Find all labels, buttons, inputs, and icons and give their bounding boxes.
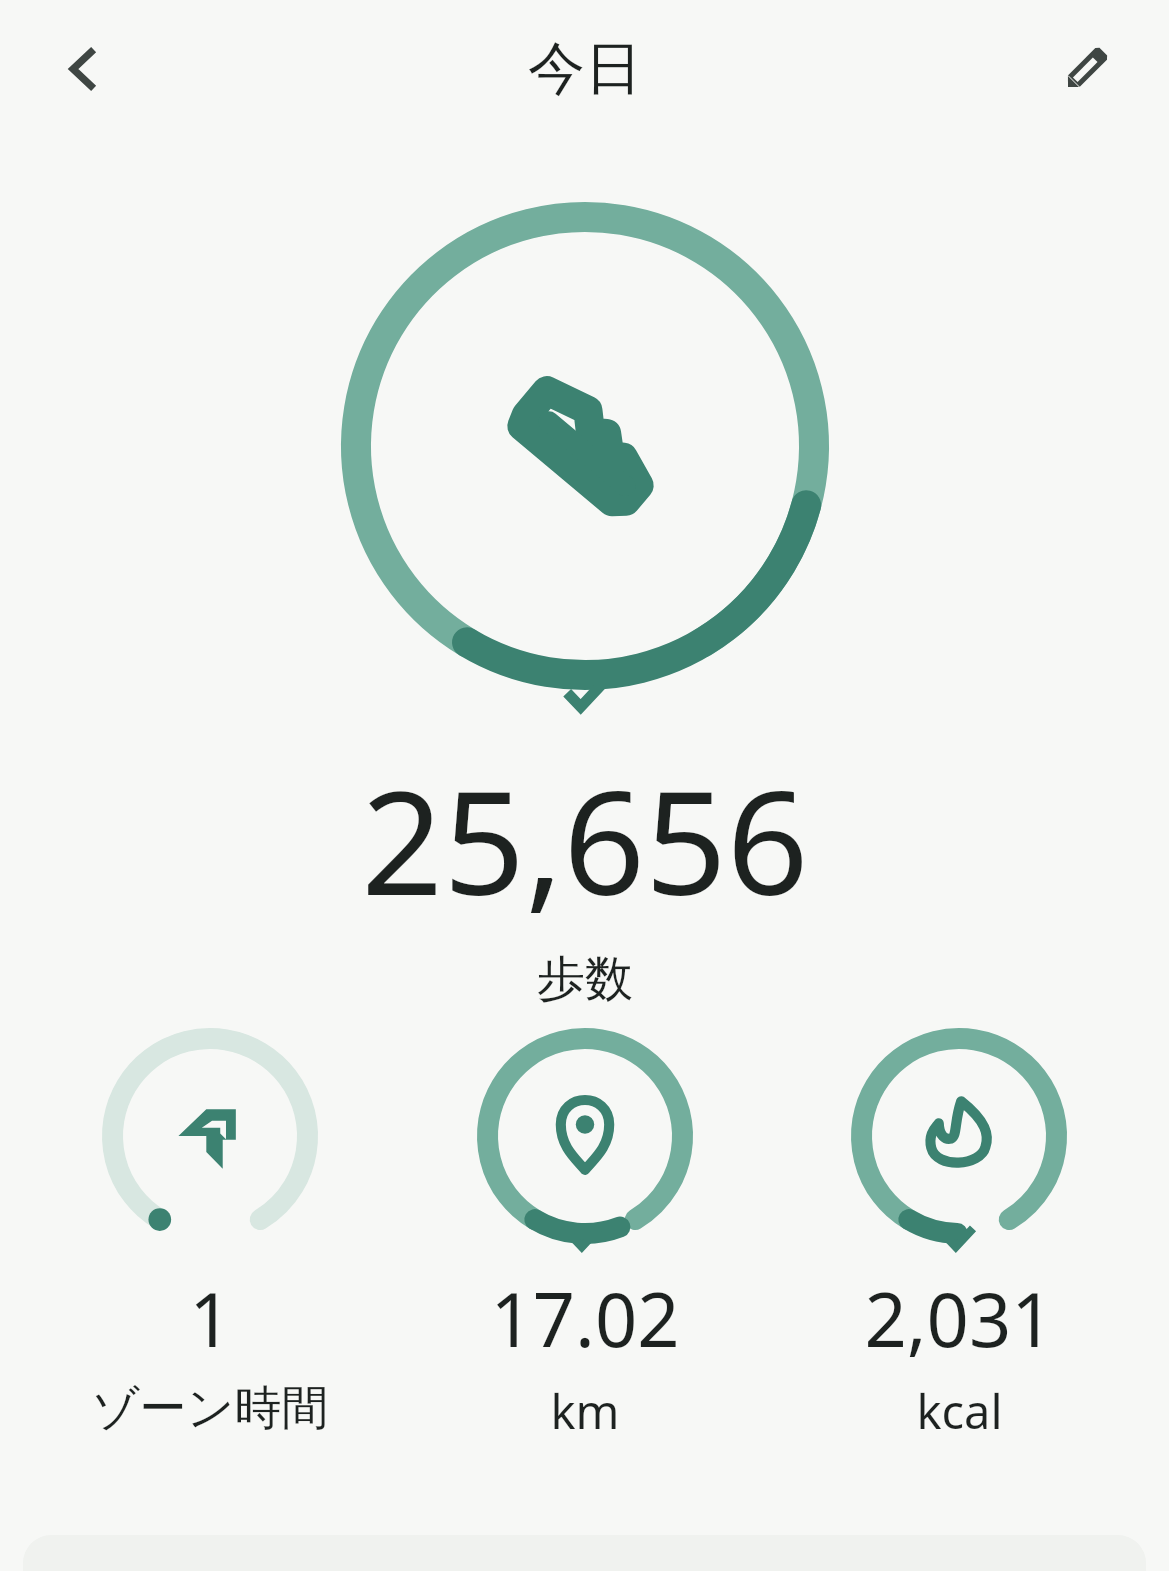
staticText: 今日	[528, 33, 642, 105]
button[interactable]: 1	[45, 1020, 375, 1438]
staticText: 歩数	[537, 949, 633, 1009]
staticText: 2,031	[864, 1268, 1054, 1369]
staticText: km	[550, 1379, 620, 1443]
staticText: 25,656	[361, 742, 809, 937]
button[interactable]: 17.02	[420, 1020, 750, 1443]
staticText: ゾーン時間	[91, 1379, 329, 1438]
staticText: 1	[189, 1268, 232, 1369]
staticText: 17.02	[490, 1268, 680, 1369]
button[interactable]: 2,031	[794, 1020, 1124, 1443]
staticText: kcal	[916, 1379, 1003, 1443]
button[interactable]: Edit	[1037, 20, 1135, 118]
button[interactable]: Back	[34, 20, 132, 118]
